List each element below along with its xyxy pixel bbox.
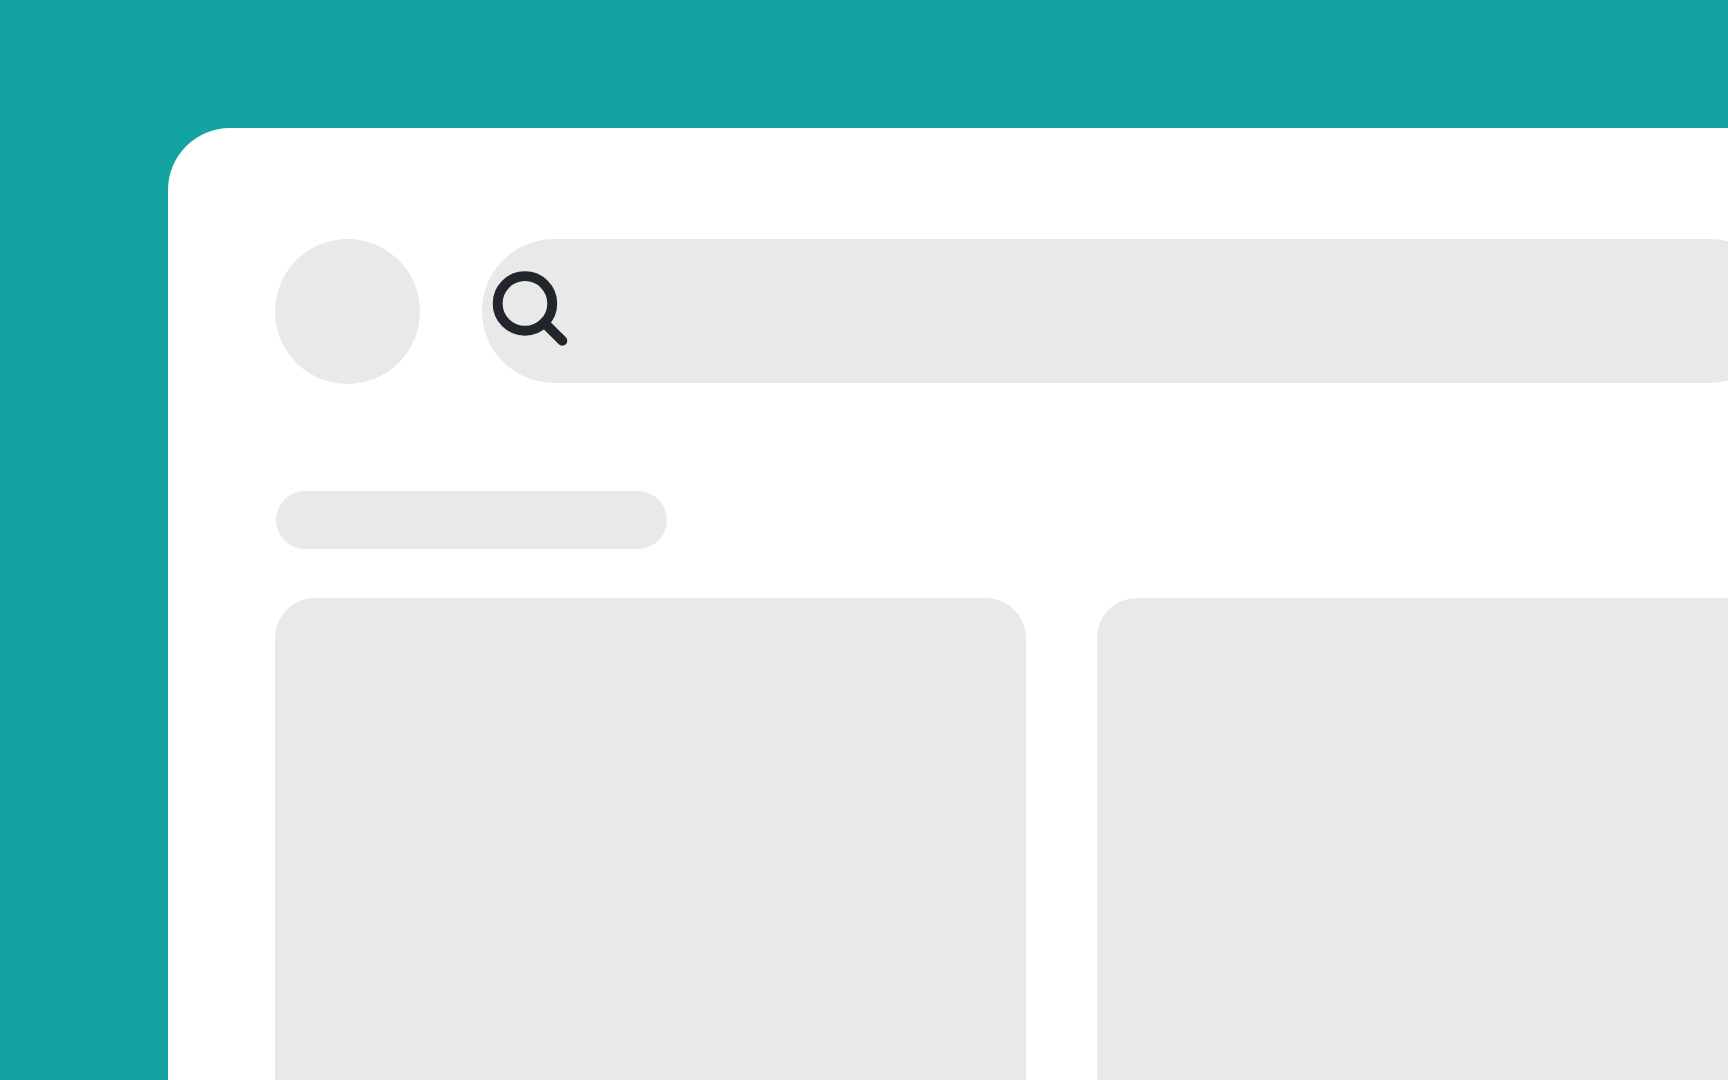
button[interactable]: Search	[482, 239, 1728, 383]
button[interactable]: Account	[275, 239, 420, 384]
